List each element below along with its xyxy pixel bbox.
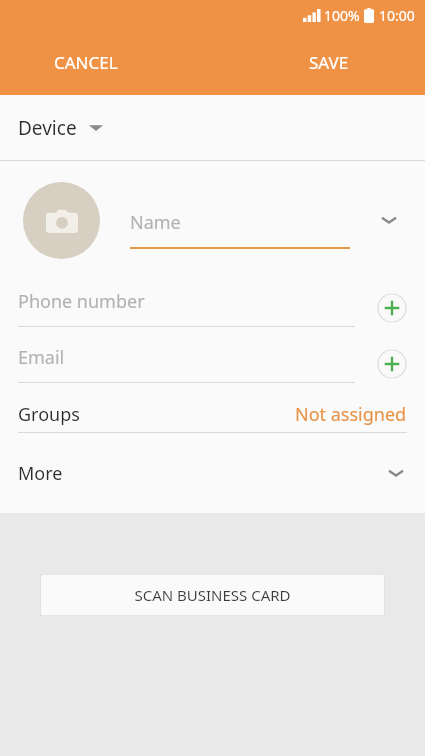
staticText: CANCEL [54, 51, 118, 74]
staticText: Groups [18, 402, 80, 427]
button[interactable]: Add photo [23, 182, 100, 259]
button[interactable]: SCAN BUSINESS CARD [40, 574, 385, 616]
staticText: Not assigned [295, 402, 407, 427]
button[interactable]: Groups [0, 397, 425, 433]
button[interactable]: CANCEL [40, 43, 132, 82]
button[interactable]: Add Phone number [375, 291, 409, 325]
button[interactable]: Expand name [370, 201, 408, 239]
button[interactable]: Add Email [375, 347, 409, 381]
staticText: Phone number [18, 289, 145, 314]
button[interactable]: Name [130, 192, 350, 249]
staticText: More [18, 461, 63, 486]
staticText: Email [18, 345, 65, 370]
staticText: Name [130, 210, 181, 235]
button[interactable]: Email [0, 345, 355, 383]
staticText: Device [18, 115, 77, 141]
button[interactable]: More [0, 433, 425, 513]
button[interactable]: SAVE [295, 43, 363, 82]
button[interactable]: Phone number [0, 289, 355, 327]
staticText: 100% [324, 6, 360, 25]
staticText: SAVE [309, 51, 349, 74]
staticText: SCAN BUSINESS CARD [134, 585, 291, 605]
button[interactable]: Device [0, 95, 425, 160]
staticText: 10:00 [379, 6, 415, 25]
